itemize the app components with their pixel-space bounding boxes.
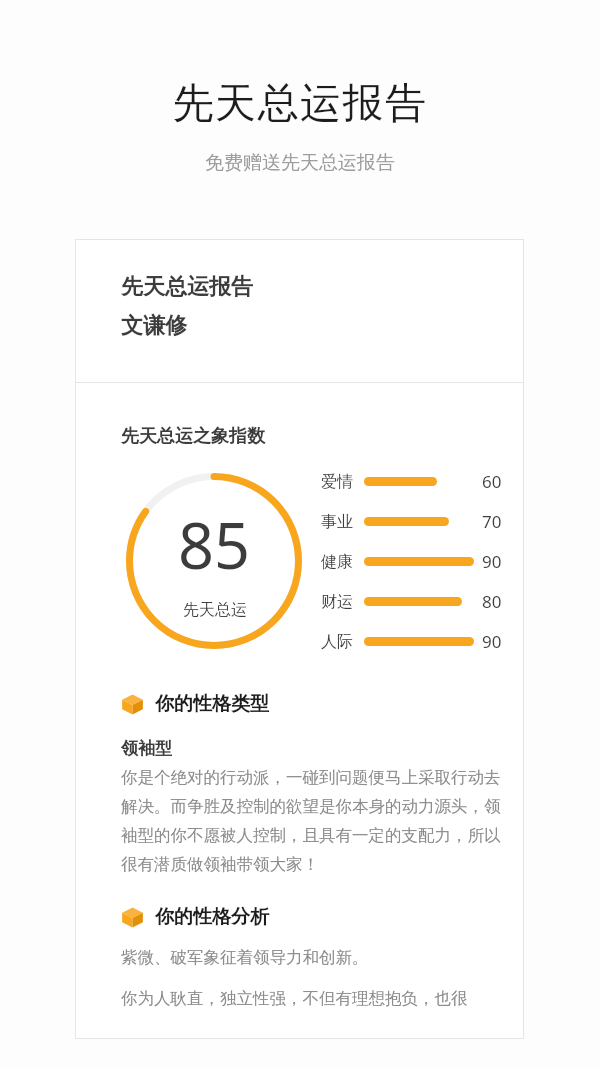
- staticText: 85: [178, 502, 251, 588]
- staticText: 领袖型: [121, 738, 172, 759]
- staticText: 你的性格类型: [155, 692, 269, 716]
- staticText: 文谦修: [121, 312, 187, 340]
- staticText: 你是个绝对的行动派，一碰到问题便马上采取行动去解决。而争胜及控制的欲望是你本身的…: [121, 767, 502, 875]
- staticText: 免费赠送先天总运报告: [0, 151, 600, 175]
- staticText: 先天总运之象指数: [121, 425, 265, 448]
- staticText: 你的性格分析: [155, 905, 269, 929]
- staticText: 70: [482, 510, 502, 533]
- staticText: 事业: [321, 512, 353, 532]
- staticText: 先天总运: [183, 600, 247, 620]
- staticText: 人际: [321, 632, 353, 652]
- button[interactable]: Section marker: [121, 905, 269, 929]
- staticText: 你为人耿直，独立性强，不但有理想抱负，也很: [121, 988, 468, 1009]
- staticText: 90: [482, 630, 502, 653]
- staticText: 60: [482, 470, 502, 493]
- staticText: 财运: [321, 592, 353, 612]
- staticText: 爱情: [321, 472, 353, 492]
- staticText: 80: [482, 590, 502, 613]
- other: Section marker: [121, 693, 144, 716]
- button[interactable]: Section marker: [121, 692, 269, 716]
- staticText: 90: [482, 550, 502, 573]
- button[interactable]: 先天总运报告: [75, 239, 524, 1039]
- staticText: 先天总运报告: [0, 78, 600, 130]
- other: Section marker: [121, 906, 144, 929]
- staticText: 紫微、破军象征着领导力和创新。: [121, 947, 369, 968]
- staticText: 先天总运报告: [121, 273, 253, 301]
- staticText: 健康: [321, 552, 353, 572]
